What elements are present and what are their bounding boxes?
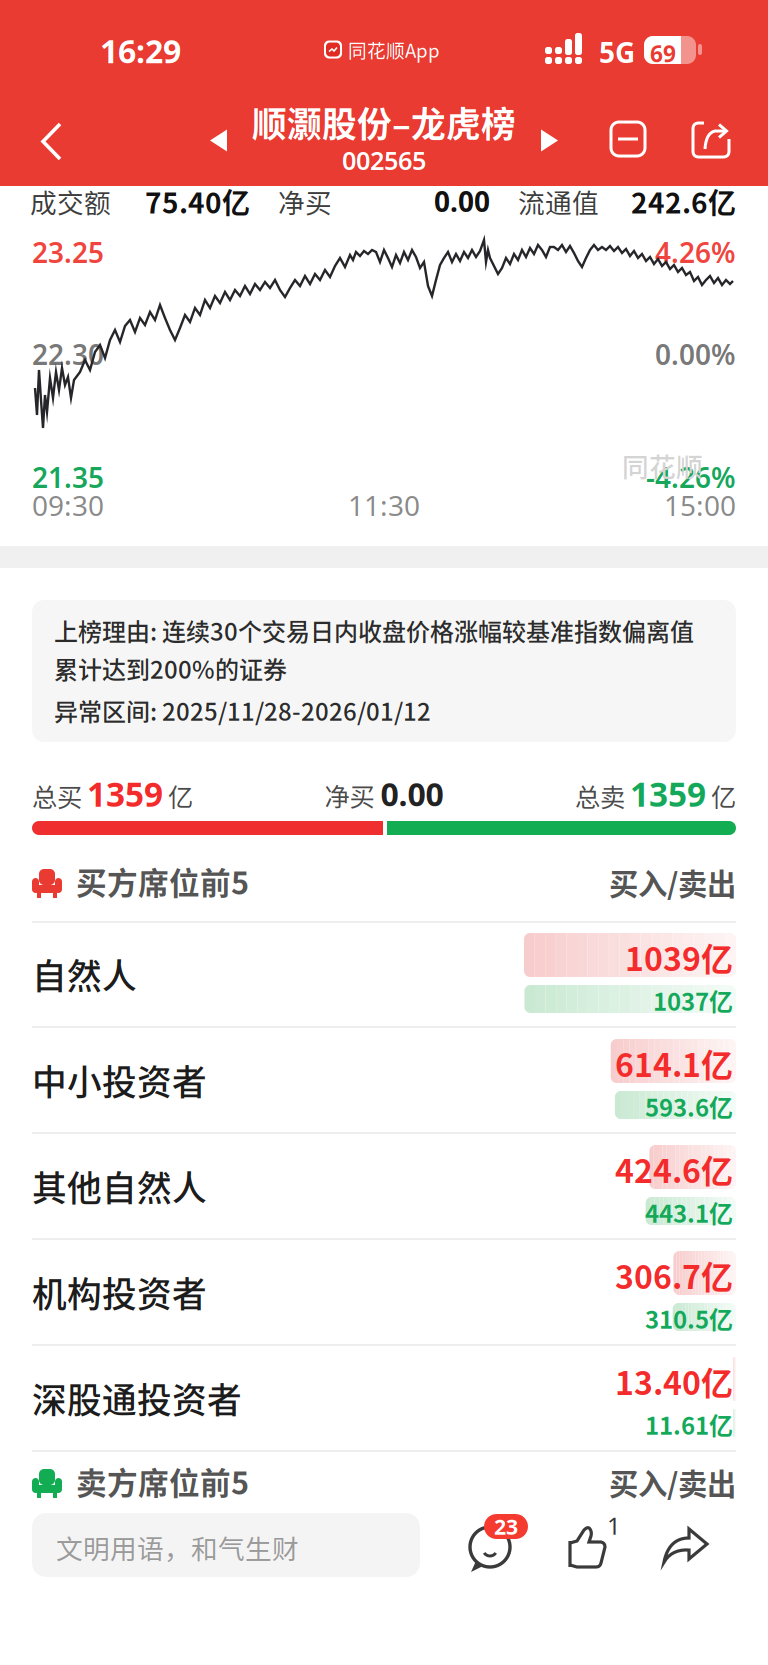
staticText: 21.35 xyxy=(32,458,104,496)
button[interactable]: Next stock xyxy=(0,0,768,186)
staticText: 15:00 xyxy=(664,486,736,524)
button[interactable]: Share xyxy=(662,1529,710,1563)
staticText: 09:30 xyxy=(32,486,104,524)
staticText: 异常区间: 2025/11/28-2026/01/12 xyxy=(54,693,431,728)
staticText: 顺灏股份–龙虎榜 xyxy=(252,97,516,147)
staticText: 其他自然人 xyxy=(32,1161,207,1211)
staticText: 同花顺App xyxy=(348,36,440,63)
staticText: 75.40亿 xyxy=(145,181,250,221)
staticText: 买方席位前5 xyxy=(76,859,249,903)
staticText: 306.7亿 xyxy=(615,1252,733,1298)
staticText: 文明用语，和气生财 xyxy=(56,1528,299,1567)
staticText: 23 xyxy=(494,1512,518,1541)
staticText: 机构投资者 xyxy=(32,1267,207,1317)
button[interactable]: Minimize xyxy=(611,122,645,156)
staticText: 自然人 xyxy=(32,949,137,999)
staticText: 1037亿 xyxy=(653,983,733,1018)
staticText: 242.6亿 xyxy=(631,181,736,221)
button[interactable]: Comments xyxy=(464,1521,534,1577)
staticText: 5G xyxy=(599,33,635,71)
staticText: 1359 xyxy=(87,771,163,816)
staticText: 16:29 xyxy=(100,29,181,73)
staticText: 1 xyxy=(607,1509,621,1542)
staticText: 累计达到200%的证券 xyxy=(54,651,287,686)
staticText: 22.30 xyxy=(32,335,104,373)
staticText: 11.61亿 xyxy=(645,1407,733,1442)
button[interactable]: 文明用语，和气生财 xyxy=(32,1513,420,1577)
staticText: 002565 xyxy=(342,143,426,177)
button[interactable]: Back xyxy=(0,0,768,186)
staticText: 总买 xyxy=(32,777,82,814)
staticText: 买入/卖出 xyxy=(609,1461,736,1503)
staticText: 13.40亿 xyxy=(615,1358,733,1404)
staticText: 总卖 xyxy=(575,777,625,814)
staticText: 卖方席位前5 xyxy=(76,1459,249,1503)
staticText: 1359 xyxy=(630,771,706,816)
button[interactable]: Share xyxy=(0,0,768,186)
staticText: 11:30 xyxy=(348,486,420,524)
staticText: 净买 xyxy=(324,777,374,813)
staticText: 0.00 xyxy=(434,182,490,220)
staticText: 310.5亿 xyxy=(645,1301,733,1336)
staticText: 买入/卖出 xyxy=(609,861,736,903)
button[interactable]: Like xyxy=(560,1525,616,1571)
staticText: 593.6亿 xyxy=(645,1089,733,1124)
staticText: 614.1亿 xyxy=(615,1040,733,1086)
staticText: 1039亿 xyxy=(625,934,733,980)
staticText: 0.00 xyxy=(380,772,443,816)
staticText: -4.26% xyxy=(646,458,736,496)
staticText: 净买 xyxy=(278,182,332,221)
staticText: 69 xyxy=(650,38,676,69)
staticText: 上榜理由: 连续30个交易日内收盘价格涨幅较基准指数偏离值 xyxy=(54,613,694,648)
staticText: 0.00% xyxy=(655,335,736,373)
staticText: 亿 xyxy=(168,777,193,814)
staticText: 中小投资者 xyxy=(32,1055,207,1105)
button[interactable]: Previous stock xyxy=(0,0,768,186)
staticText: 424.6亿 xyxy=(615,1146,733,1192)
staticText: 成交额 xyxy=(30,182,111,221)
staticText: 流通值 xyxy=(518,182,599,221)
staticText: 4.26% xyxy=(655,233,736,271)
staticText: 23.25 xyxy=(32,233,104,271)
staticText: 深股通投资者 xyxy=(32,1373,242,1423)
staticText: 亿 xyxy=(711,777,736,814)
staticText: 同花顺 xyxy=(622,446,703,485)
staticText: 443.1亿 xyxy=(645,1195,733,1230)
